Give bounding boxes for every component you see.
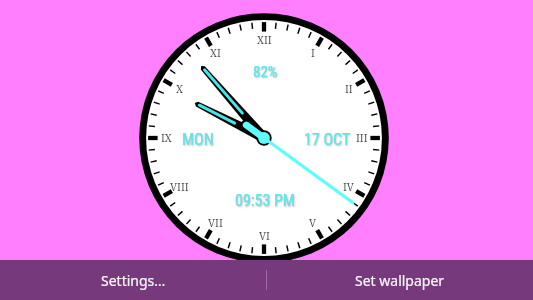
button[interactable]: Settings… [0, 260, 266, 300]
staticText: VII [208, 216, 223, 230]
staticText: Settings… [101, 271, 166, 290]
staticText: II [345, 82, 353, 96]
staticText: VI [259, 229, 270, 243]
staticText: MON [182, 130, 214, 149]
staticText: 82% [253, 63, 278, 81]
staticText: VIII [170, 180, 189, 194]
staticText: I [311, 46, 315, 60]
staticText: V [309, 216, 317, 230]
staticText: III [356, 131, 368, 145]
staticText: IX [161, 131, 172, 145]
button[interactable]: Set wallpaper [266, 260, 533, 300]
staticText: X [176, 82, 183, 96]
staticText: XII [257, 33, 272, 47]
staticText: XI [210, 46, 221, 60]
staticText: 17 OCT [304, 130, 351, 149]
staticText: 09:53 PM [235, 191, 295, 210]
staticText: IV [343, 180, 354, 194]
staticText: Set wallpaper [355, 271, 445, 290]
